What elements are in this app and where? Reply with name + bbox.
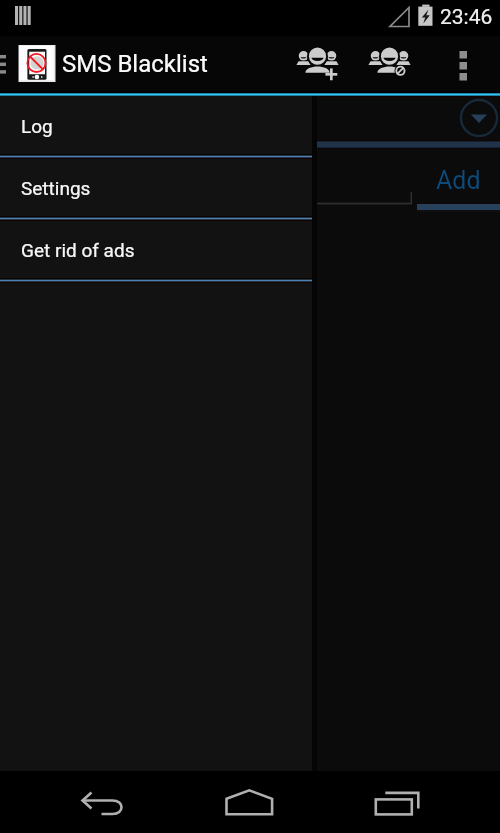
staticText: SMS Blacklist	[62, 50, 208, 78]
staticText: 23:46	[440, 5, 493, 30]
button[interactable]: Add contacts	[289, 36, 346, 93]
button[interactable]: Recent apps	[333, 771, 500, 833]
button[interactable]: Log	[0, 95, 312, 157]
staticText: Get rid of ads	[21, 239, 135, 261]
staticText: Settings	[21, 177, 91, 199]
button[interactable]: Back	[0, 771, 166, 833]
button[interactable]: Blocked contacts	[361, 36, 418, 93]
staticText: Log	[21, 115, 53, 137]
button[interactable]: Home	[166, 771, 333, 833]
button[interactable]: Add	[417, 153, 500, 210]
button[interactable]: More options	[437, 36, 490, 93]
button[interactable]: Get rid of ads	[0, 219, 312, 281]
button[interactable]: Choose list	[457, 96, 500, 140]
button[interactable]: Navigate up	[0, 36, 14, 93]
button[interactable]: Settings	[0, 157, 312, 219]
staticText: Add	[436, 166, 481, 195]
